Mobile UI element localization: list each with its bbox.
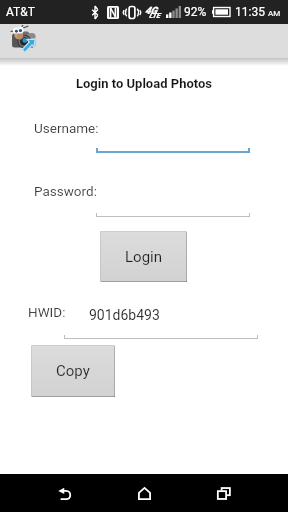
staticText: 11:35	[235, 5, 265, 19]
staticText: 92%	[184, 5, 207, 19]
button[interactable]: Login	[100, 231, 187, 282]
staticText: HWID:	[28, 304, 66, 320]
staticText: Username:	[34, 120, 99, 136]
staticText: AT&T	[6, 5, 35, 19]
staticText: Password:	[34, 183, 97, 199]
button[interactable]: Recents	[200, 474, 248, 512]
button[interactable]: Back	[40, 474, 88, 512]
staticText: Copy	[56, 362, 90, 380]
staticText: LTE	[149, 12, 161, 20]
staticText: Login to Upload Photos	[0, 76, 288, 91]
staticText: 901d6b493	[89, 307, 160, 323]
staticText: 4G	[145, 5, 158, 17]
staticText: Login	[125, 248, 162, 266]
button[interactable]: Home	[120, 474, 168, 512]
staticText: AM	[268, 9, 281, 18]
button[interactable]: Copy	[31, 345, 115, 397]
